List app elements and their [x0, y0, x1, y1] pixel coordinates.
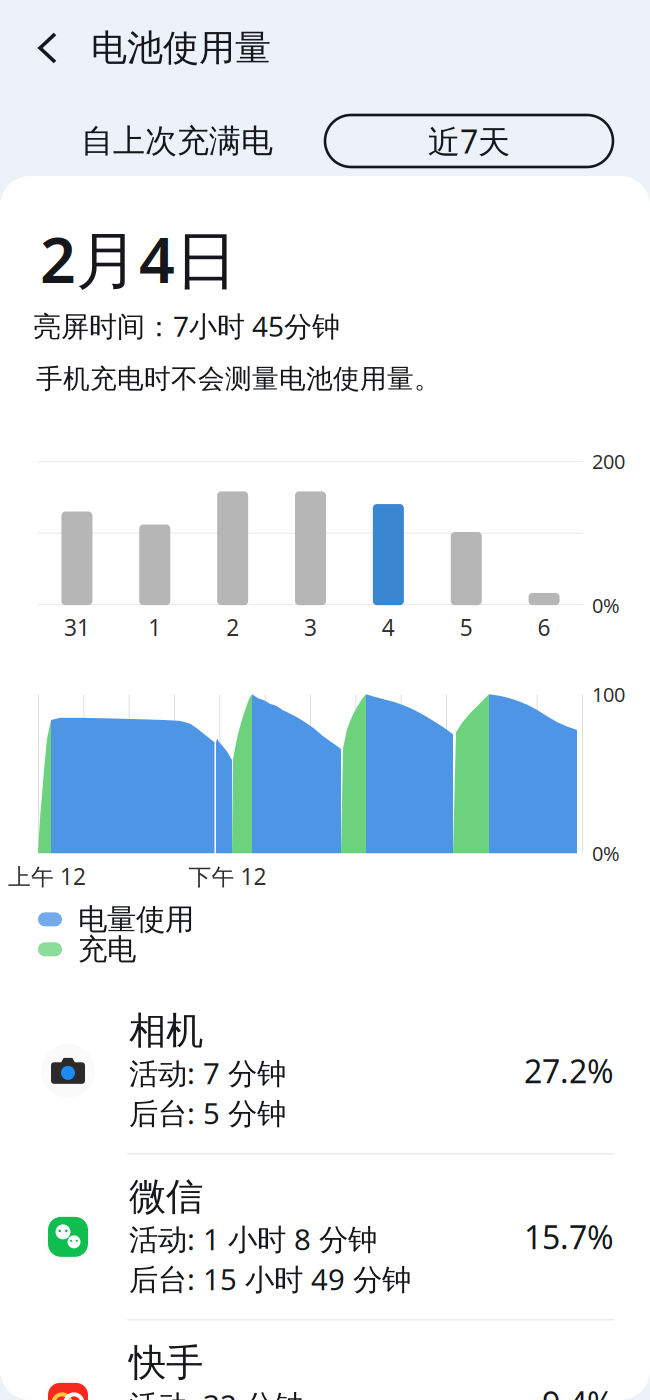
staticText: 31 [64, 612, 90, 642]
staticText: 自上次充满电 [81, 121, 273, 161]
staticText: 6 [538, 612, 551, 642]
staticText: 后台: 5 分钟 [129, 1093, 286, 1132]
button[interactable]: Back [0, 0, 91, 96]
staticText: 亮屏时间：7小时 45分钟 [33, 307, 340, 344]
staticText: 活动: 7 分钟 [129, 1053, 286, 1092]
button[interactable]: 近7天 [325, 115, 613, 167]
staticText: 后台: 15 小时 49 分钟 [129, 1259, 411, 1298]
staticText: 手机充电时不会测量电池使用量。 [36, 362, 441, 395]
staticText: 2月4日 [40, 217, 238, 300]
staticText: 活动: 32 分钟 [129, 1385, 303, 1400]
staticText: 5 [460, 612, 473, 642]
staticText: 微信 [129, 1174, 203, 1220]
staticText: 0% [592, 592, 620, 618]
staticText: 相机 [129, 1008, 203, 1054]
button[interactable]: 快手 [0, 1320, 650, 1400]
staticText: 活动: 1 小时 8 分钟 [129, 1219, 377, 1258]
staticText: 快手 [129, 1340, 203, 1386]
button[interactable]: 相机 [0, 988, 650, 1153]
staticText: 15.7% [524, 1216, 614, 1258]
button[interactable]: 自上次充满电 [69, 115, 285, 167]
staticText: 下午 12 [188, 861, 266, 891]
staticText: 电池使用量 [91, 26, 271, 70]
staticText: 1 [148, 612, 161, 642]
staticText: 200 [592, 448, 625, 474]
staticText: 近7天 [428, 120, 510, 162]
staticText: 电量使用 [78, 901, 194, 937]
staticText: 100 [592, 681, 625, 708]
staticText: 9.4% [542, 1382, 614, 1400]
staticText: 2 [226, 612, 239, 642]
staticText: 上午 12 [8, 861, 86, 891]
staticText: 27.2% [524, 1050, 614, 1092]
staticText: 4 [382, 612, 395, 642]
staticText: 0% [592, 840, 620, 867]
button[interactable]: 微信 [0, 1154, 650, 1319]
staticText: 充电 [78, 931, 136, 967]
staticText: 3 [304, 612, 317, 642]
